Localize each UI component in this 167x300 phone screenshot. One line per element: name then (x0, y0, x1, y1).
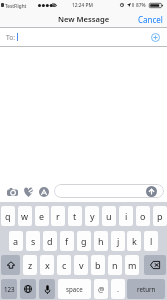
button[interactable]: y (85, 206, 99, 226)
staticText: r (56, 210, 60, 222)
button[interactable]: l (144, 231, 158, 251)
button[interactable]: c (57, 255, 71, 275)
staticText: y (90, 210, 95, 222)
staticText: g (81, 235, 87, 247)
button[interactable]: Add contact (148, 30, 163, 45)
staticText: 87% (136, 2, 146, 9)
staticText: p (157, 210, 163, 222)
button[interactable]: Shift (1, 255, 20, 275)
button[interactable]: b (91, 255, 105, 275)
staticText: space (66, 285, 83, 293)
staticText: return (137, 285, 156, 293)
button[interactable]: x (40, 255, 54, 275)
staticText: To: (6, 33, 15, 42)
staticText: q (5, 210, 11, 222)
button[interactable]: s (26, 231, 40, 251)
button[interactable]: h (94, 231, 108, 251)
button[interactable]: Cancel (132, 11, 167, 27)
button[interactable]: z (23, 255, 37, 275)
staticText: v (79, 259, 84, 271)
staticText: 123 (4, 285, 15, 293)
staticText: x (45, 259, 50, 271)
button[interactable]: v (74, 255, 88, 275)
button[interactable] (54, 184, 164, 198)
staticText: d (47, 235, 53, 247)
button[interactable]: g (77, 231, 91, 251)
button[interactable]: e (35, 206, 49, 226)
button[interactable]: @ (94, 279, 108, 299)
staticText: t (73, 210, 77, 222)
button[interactable]: Backspace (144, 255, 166, 275)
staticText: o (140, 210, 146, 222)
staticText: 12:24 PM (72, 2, 93, 9)
button[interactable]: w (18, 206, 32, 226)
staticText: . (117, 284, 119, 294)
staticText: s (31, 235, 36, 247)
staticText: b (95, 259, 101, 271)
button[interactable]: f (60, 231, 74, 251)
button[interactable]: r (51, 206, 65, 226)
button[interactable]: Digital Touch (18, 184, 38, 200)
button[interactable]: i (119, 206, 133, 226)
staticText: i (125, 210, 128, 222)
button[interactable]: Send (146, 186, 157, 197)
staticText: j (117, 235, 120, 247)
button[interactable]: p (153, 206, 167, 226)
staticText: m (128, 259, 137, 271)
button[interactable]: Camera (3, 184, 22, 200)
button[interactable]: u (102, 206, 116, 226)
staticText: z (28, 259, 33, 271)
staticText: Cancel (138, 14, 163, 24)
staticText: f (65, 235, 69, 247)
button[interactable]: j (111, 231, 125, 251)
staticText: a (13, 235, 19, 247)
staticText: n (112, 259, 118, 271)
button[interactable]: 123 (1, 279, 17, 299)
staticText: k (132, 235, 137, 247)
button[interactable]: t (68, 206, 82, 226)
button[interactable]: d (43, 231, 57, 251)
button[interactable]: k (127, 231, 141, 251)
button[interactable]: return (127, 279, 165, 299)
staticText: h (98, 235, 104, 247)
button[interactable]: Dictate (39, 279, 55, 299)
staticText: e (39, 210, 45, 222)
staticText: @ (98, 284, 105, 294)
button[interactable]: Change keyboard (20, 279, 36, 299)
staticText: c (62, 259, 67, 271)
staticText: u (106, 210, 112, 222)
staticText: TestFlight (5, 3, 27, 9)
button[interactable]: space (58, 279, 91, 299)
button[interactable]: a (9, 231, 23, 251)
staticText: w (21, 210, 29, 222)
button[interactable]: o (136, 206, 150, 226)
button[interactable]: Apps (34, 184, 54, 200)
button[interactable]: n (108, 255, 122, 275)
staticText: New Message (0, 14, 167, 24)
button[interactable]: . (111, 279, 125, 299)
button[interactable]: m (125, 255, 139, 275)
button[interactable]: q (1, 206, 15, 226)
staticText: l (150, 235, 153, 247)
